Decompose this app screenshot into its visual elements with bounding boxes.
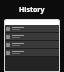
staticText: History [19,5,45,15]
button[interactable] [4,33,60,40]
button[interactable] [4,41,60,48]
button[interactable] [4,25,60,32]
button[interactable]: History [0,0,64,19]
button[interactable] [4,49,60,56]
